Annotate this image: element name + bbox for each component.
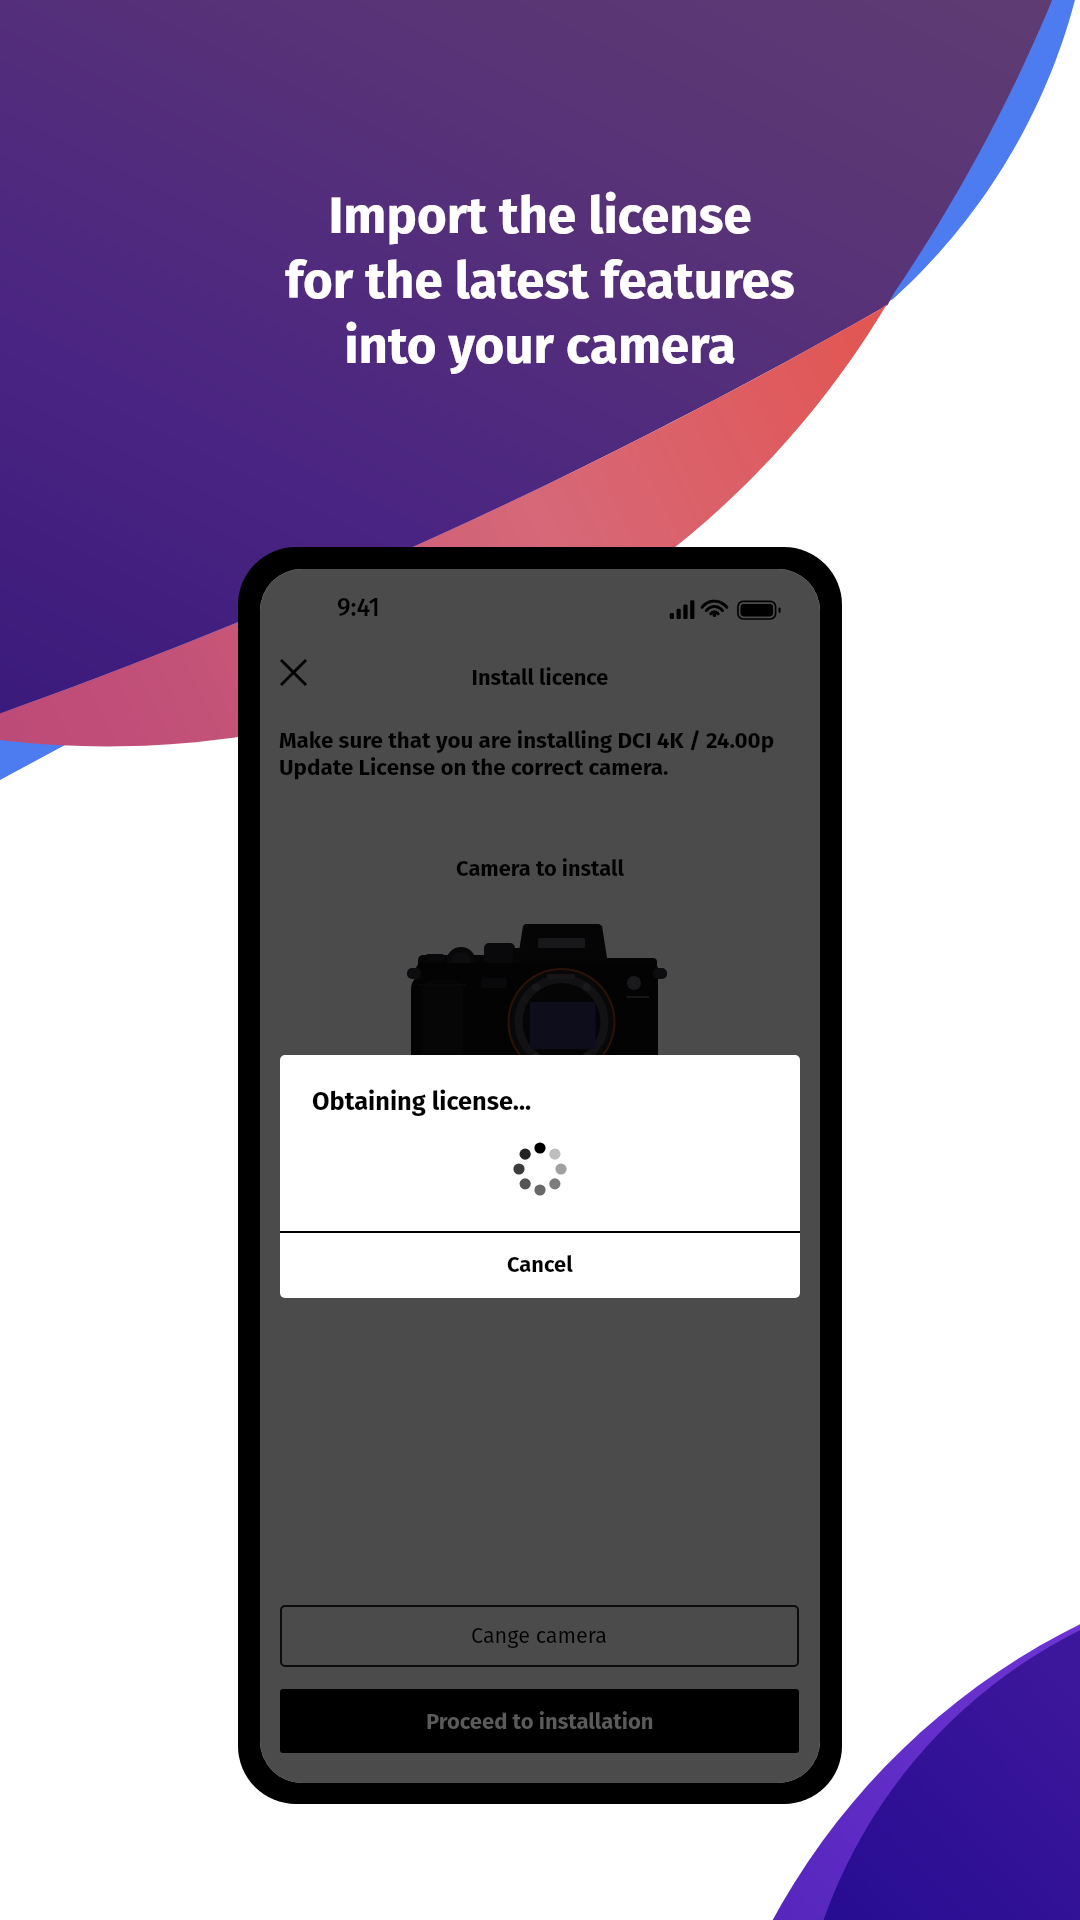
staticText: Cange camera [471, 1623, 608, 1649]
staticText: Make sure that you are installing DCI 4K… [279, 727, 775, 781]
staticText: 9:41 [337, 593, 380, 623]
staticText: Cancel [507, 1252, 573, 1278]
button[interactable]: Proceed to installation [280, 1689, 799, 1753]
button[interactable]: Cange camera [280, 1605, 799, 1667]
staticText: Proceed to installation [426, 1708, 654, 1734]
staticText: Camera to install [260, 856, 820, 882]
button[interactable]: Cancel [280, 1233, 800, 1296]
staticText: Import the license for the latest featur… [0, 185, 1080, 376]
button[interactable]: Close [270, 649, 316, 695]
staticText: Install licence [260, 665, 820, 691]
staticText: Proceed to installation [426, 1708, 654, 1734]
staticText: Obtaining license... [312, 1086, 532, 1116]
